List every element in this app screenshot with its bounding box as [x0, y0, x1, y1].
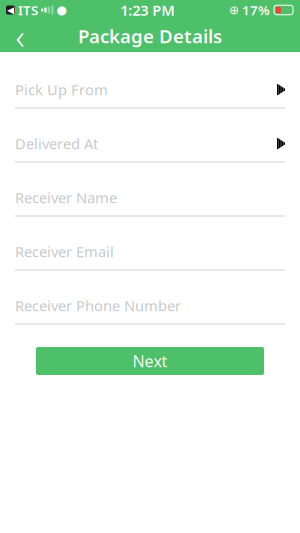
- staticText: Package Details: [78, 24, 222, 48]
- button[interactable]: Receiver Phone Number: [0, 279, 300, 333]
- staticText: Delivered At: [15, 134, 98, 153]
- button[interactable]: Receiver Name: [0, 171, 300, 225]
- staticText: ITS: [18, 1, 38, 19]
- staticText: 1:23 PM: [120, 0, 175, 20]
- staticText: Pick Up From: [15, 80, 108, 99]
- staticText: 17%: [242, 1, 270, 19]
- staticText: ‹: [15, 13, 24, 59]
- staticText: ⊕: [229, 3, 239, 17]
- staticText: Receiver Name: [15, 188, 117, 207]
- button[interactable]: Pick Up From: [0, 63, 300, 117]
- button[interactable]: Back: [0, 20, 40, 52]
- staticText: Receiver Email: [15, 242, 114, 261]
- button[interactable]: Delivered At: [0, 117, 300, 171]
- staticText: Receiver Phone Number: [15, 296, 181, 315]
- staticText: ◀: [7, 5, 14, 15]
- button[interactable]: Receiver Email: [0, 225, 300, 279]
- staticText: Next: [132, 350, 167, 372]
- button[interactable]: Next: [36, 347, 264, 375]
- staticText: ●: [56, 3, 66, 17]
